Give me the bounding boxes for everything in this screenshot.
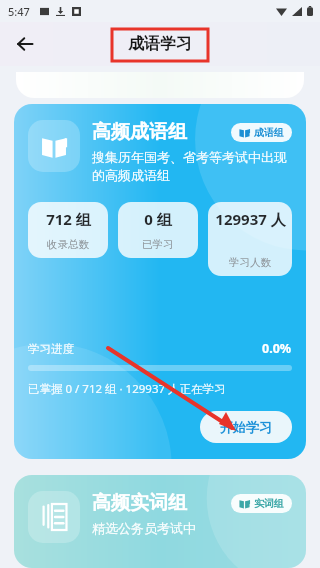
- staticText: 收录总数: [47, 238, 89, 251]
- button[interactable]: 712 组: [28, 202, 108, 258]
- button[interactable]: 高频成语组: [14, 104, 306, 459]
- staticText: 高频成语组: [92, 120, 187, 144]
- staticText: 精选公务员考试中: [92, 520, 196, 536]
- staticText: 成语学习: [128, 34, 192, 54]
- button[interactable]: 成语组: [231, 123, 292, 142]
- staticText: 129937 人: [215, 209, 286, 229]
- staticText: 712 组: [46, 209, 91, 229]
- staticText: 实词组: [254, 497, 284, 510]
- staticText: 0.0%: [262, 340, 292, 357]
- staticText: 搜集历年国考、省考等考试中出现的高频成语组: [92, 149, 292, 184]
- staticText: 开始学习: [220, 419, 272, 435]
- button[interactable]: 129937 人: [208, 202, 292, 276]
- button[interactable]: 实词组: [231, 494, 292, 513]
- staticText: 0 组: [144, 209, 172, 229]
- button[interactable]: 0 组: [118, 202, 198, 258]
- staticText: 学习进度: [28, 342, 74, 356]
- staticText: 成语组: [254, 126, 284, 139]
- button[interactable]: 开始学习: [200, 411, 292, 443]
- staticText: 已掌握 0 / 712 组 · 129937 人正在学习: [28, 381, 226, 397]
- button[interactable]: 高频实词组: [14, 475, 306, 568]
- staticText: 5:47: [8, 4, 30, 19]
- staticText: 高频实词组: [92, 491, 187, 515]
- button[interactable]: [16, 72, 304, 98]
- button[interactable]: Back: [8, 27, 42, 61]
- staticText: 学习人数: [229, 256, 271, 269]
- staticText: 已学习: [142, 238, 174, 251]
